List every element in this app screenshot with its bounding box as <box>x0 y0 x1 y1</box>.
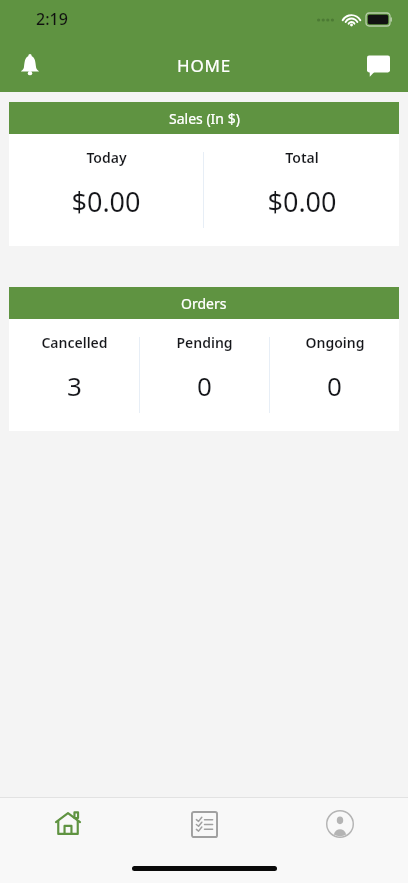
staticText: 3 <box>67 368 82 403</box>
staticText: $0.00 <box>267 183 337 220</box>
staticText: 0 <box>197 368 212 403</box>
staticText: Total <box>285 148 319 167</box>
staticText: 0 <box>327 368 342 403</box>
button[interactable]: Profile <box>272 798 408 850</box>
staticText: HOME <box>177 54 231 77</box>
button[interactable]: Home <box>0 798 136 850</box>
staticText: $0.00 <box>71 183 141 220</box>
button[interactable]: Orders <box>136 798 272 850</box>
staticText: Sales (In $) <box>169 109 240 128</box>
staticText: Ongoing <box>305 333 365 352</box>
button[interactable]: Notifications <box>6 41 54 89</box>
staticText: 2:19 <box>36 8 68 30</box>
staticText: Pending <box>176 333 233 352</box>
staticText: Cancelled <box>41 333 108 352</box>
button[interactable]: Messages <box>354 41 402 89</box>
button[interactable]: Orders <box>9 287 399 431</box>
staticText: Today <box>86 148 127 167</box>
button[interactable]: Sales (In $) <box>9 102 399 246</box>
staticText: Orders <box>181 294 227 313</box>
